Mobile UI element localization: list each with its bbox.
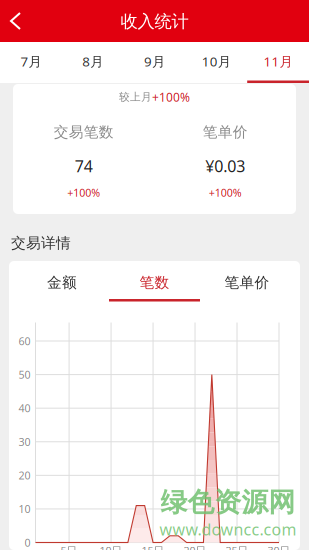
- staticText: www.downcc.com: [159, 519, 296, 540]
- staticText: 15日: [142, 543, 165, 550]
- button[interactable]: 金额: [16, 274, 108, 307]
- staticText: 笔单价: [203, 123, 248, 141]
- staticText: 收入统计: [120, 11, 188, 32]
- staticText: 20: [18, 468, 30, 482]
- staticText: 10月: [202, 52, 231, 70]
- staticText: 10日: [100, 543, 123, 550]
- staticText: 25日: [225, 543, 248, 550]
- staticText: 11月: [264, 52, 293, 70]
- staticText: 绿色资源网: [160, 486, 295, 519]
- staticText: +100%: [67, 185, 100, 200]
- staticText: 8月: [82, 52, 103, 70]
- staticText: 交易笔数: [54, 123, 114, 141]
- staticText: 30: [18, 435, 30, 449]
- staticText: 金额: [47, 273, 77, 291]
- staticText: +100%: [152, 89, 190, 105]
- staticText: 50: [18, 367, 30, 382]
- button[interactable]: 9月: [124, 42, 185, 83]
- button[interactable]: 11月: [247, 42, 309, 83]
- staticText: +100%: [209, 185, 242, 200]
- staticText: 交易详情: [11, 234, 71, 252]
- staticText: 笔数: [139, 273, 169, 291]
- staticText: 74: [75, 155, 93, 177]
- button[interactable]: Back: [0, 4, 32, 38]
- staticText: 5日: [61, 543, 78, 550]
- staticText: 30日: [267, 543, 290, 550]
- staticText: 10: [18, 502, 30, 516]
- staticText: 9月: [144, 52, 165, 70]
- staticText: 40: [18, 401, 30, 415]
- staticText: ¥0.03: [205, 155, 245, 177]
- staticText: 笔单价: [224, 273, 269, 291]
- button[interactable]: 10月: [185, 42, 247, 83]
- button[interactable]: 笔数: [108, 274, 201, 307]
- staticText: 7月: [20, 52, 41, 70]
- staticText: 较上月: [119, 90, 152, 103]
- button[interactable]: 8月: [62, 42, 124, 83]
- staticText: 0: [24, 535, 30, 550]
- staticText: 20日: [183, 543, 206, 550]
- button[interactable]: 笔单价: [201, 274, 293, 307]
- button[interactable]: 7月: [0, 42, 62, 83]
- staticText: 60: [18, 334, 30, 348]
